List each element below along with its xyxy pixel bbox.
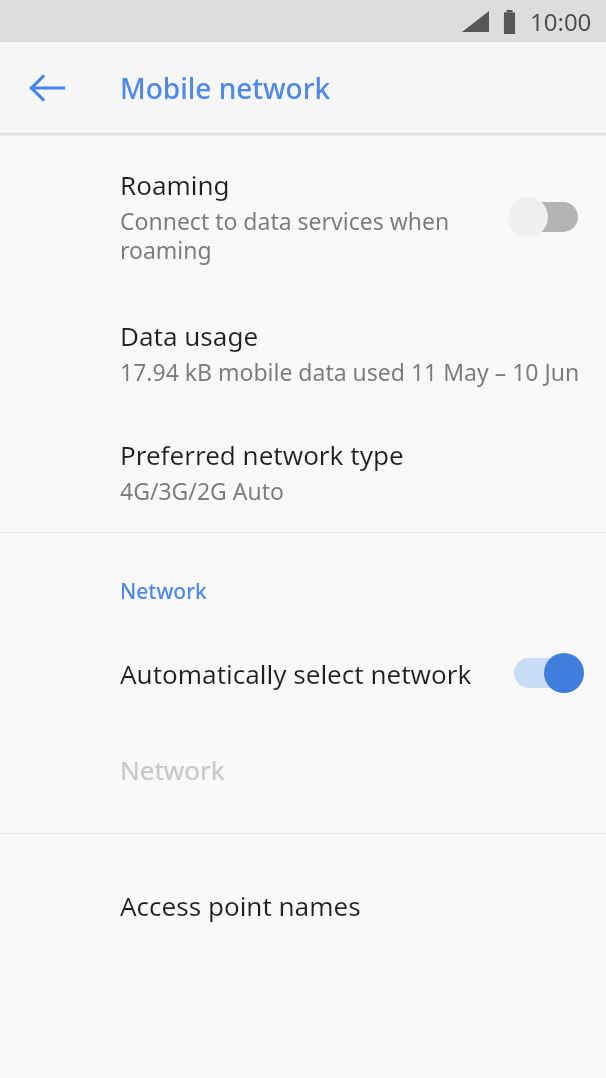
staticText: Automatically select network (120, 656, 472, 691)
staticText: Network (120, 752, 225, 787)
button[interactable]: Back (16, 57, 78, 119)
staticText: Connect to data services when roaming (120, 205, 500, 266)
staticText: Access point names (120, 888, 361, 923)
staticText: Mobile network (120, 69, 331, 107)
button[interactable]: Preferred network type (0, 437, 606, 506)
button[interactable]: Data usage (0, 318, 606, 387)
staticText: 17.94 kB mobile data used 11 May – 10 Ju… (120, 356, 580, 387)
staticText: Preferred network type (120, 437, 404, 472)
staticText: Data usage (120, 318, 259, 353)
staticText: 4G/3G/2G Auto (120, 475, 284, 506)
button[interactable]: Roaming (0, 167, 606, 266)
button[interactable]: Access point names (0, 888, 606, 923)
staticText: 10:00 (530, 5, 592, 38)
staticText: Roaming (120, 167, 230, 202)
button[interactable]: Network (0, 752, 606, 787)
staticText: Network (120, 577, 207, 606)
button[interactable]: Automatically select network (0, 652, 606, 694)
